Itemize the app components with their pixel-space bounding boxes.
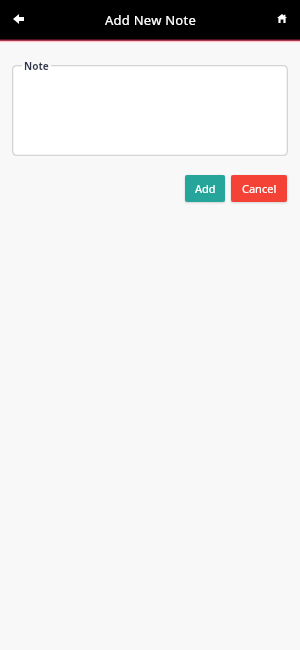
button[interactable]: Back [0,0,36,39]
button[interactable] [12,65,288,156]
button[interactable]: Home [263,0,300,39]
button[interactable]: Cancel [231,175,287,202]
staticText: Add New Note [105,11,196,29]
staticText: Note [24,59,49,73]
staticText: Cancel [242,181,277,196]
staticText: Add [195,181,216,196]
button[interactable]: Add [185,175,225,202]
